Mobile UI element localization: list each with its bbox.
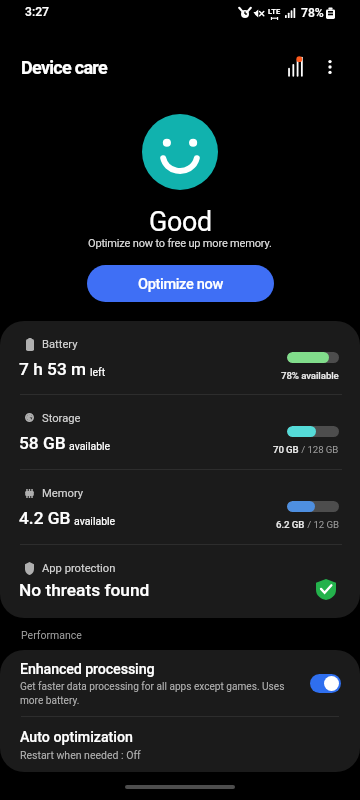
staticText: Optimize now [138,275,223,292]
button[interactable]: Enhanced processing [0,650,360,716]
button[interactable]: Battery [0,321,360,394]
staticText: Performance [21,629,82,641]
staticText: App protection [42,562,116,575]
staticText: LTE [268,7,281,16]
staticText: No threats found [19,580,150,600]
staticText: Optimize now to free up more memory. [88,237,272,250]
staticText: Storage [42,412,81,425]
button[interactable]: More options [313,50,347,84]
staticText: 7 h 53 m [19,359,87,379]
button[interactable]: Optimize now [87,265,274,302]
staticText: available [69,440,111,452]
staticText: / 128 GB [299,444,339,455]
staticText: Memory [42,487,84,500]
staticText: available [74,515,116,527]
staticText: 3:27 [25,5,50,19]
staticText: Restart when needed : Off [20,749,141,761]
staticText: 58 GB [19,433,66,453]
staticText: 70 GB [273,444,299,455]
staticText: Auto optimization [20,729,133,746]
staticText: Device care [21,57,108,78]
staticText: Battery [42,338,78,351]
staticText: Good [149,206,212,237]
staticText: Enhanced processing [20,661,155,678]
button[interactable]: Storage [0,395,360,469]
staticText: left [90,366,106,378]
button[interactable]: Usage statistics [278,50,312,84]
staticText: / 12 GB [305,519,339,530]
button[interactable]: Memory [0,470,360,544]
staticText: 78% available [281,370,339,381]
button[interactable]: Auto optimization [0,717,360,772]
button[interactable]: Enhanced processing toggle [310,674,341,693]
staticText: 6.2 GB [276,519,305,530]
button[interactable]: App protection [0,545,360,618]
staticText: 78% [301,6,324,20]
staticText: 4.2 GB [19,508,71,528]
staticText: Get faster data processing for all apps … [20,681,285,706]
